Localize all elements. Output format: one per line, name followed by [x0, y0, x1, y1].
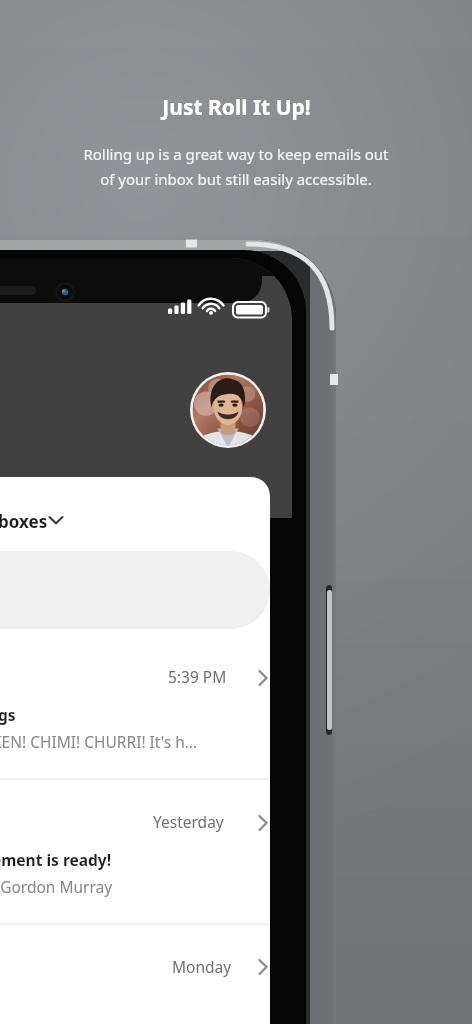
staticText: Monday: [172, 956, 232, 977]
staticText: Yesterday: [153, 811, 224, 832]
button[interactable]: Phone preview of rolled up inbox: [0, 0, 472, 1024]
staticText: Rolling up is a great way to keep emails…: [36, 144, 436, 204]
staticText: ement is ready!: [0, 849, 112, 870]
staticText: 5:39 PM: [168, 666, 227, 687]
staticText: KEN! CHIMI! CHURRI! It's h…: [0, 731, 198, 752]
staticText: Just Roll It Up!: [162, 93, 311, 122]
button[interactable]: boxes: [0, 508, 68, 534]
staticText: boxes: [0, 510, 48, 533]
button[interactable]: Monday: [0, 935, 270, 1024]
button[interactable]: 5:39 PM: [0, 645, 270, 775]
staticText: : Gordon Murray: [0, 876, 113, 897]
staticText: gs: [0, 704, 16, 725]
button[interactable]: Yesterday: [0, 790, 270, 920]
